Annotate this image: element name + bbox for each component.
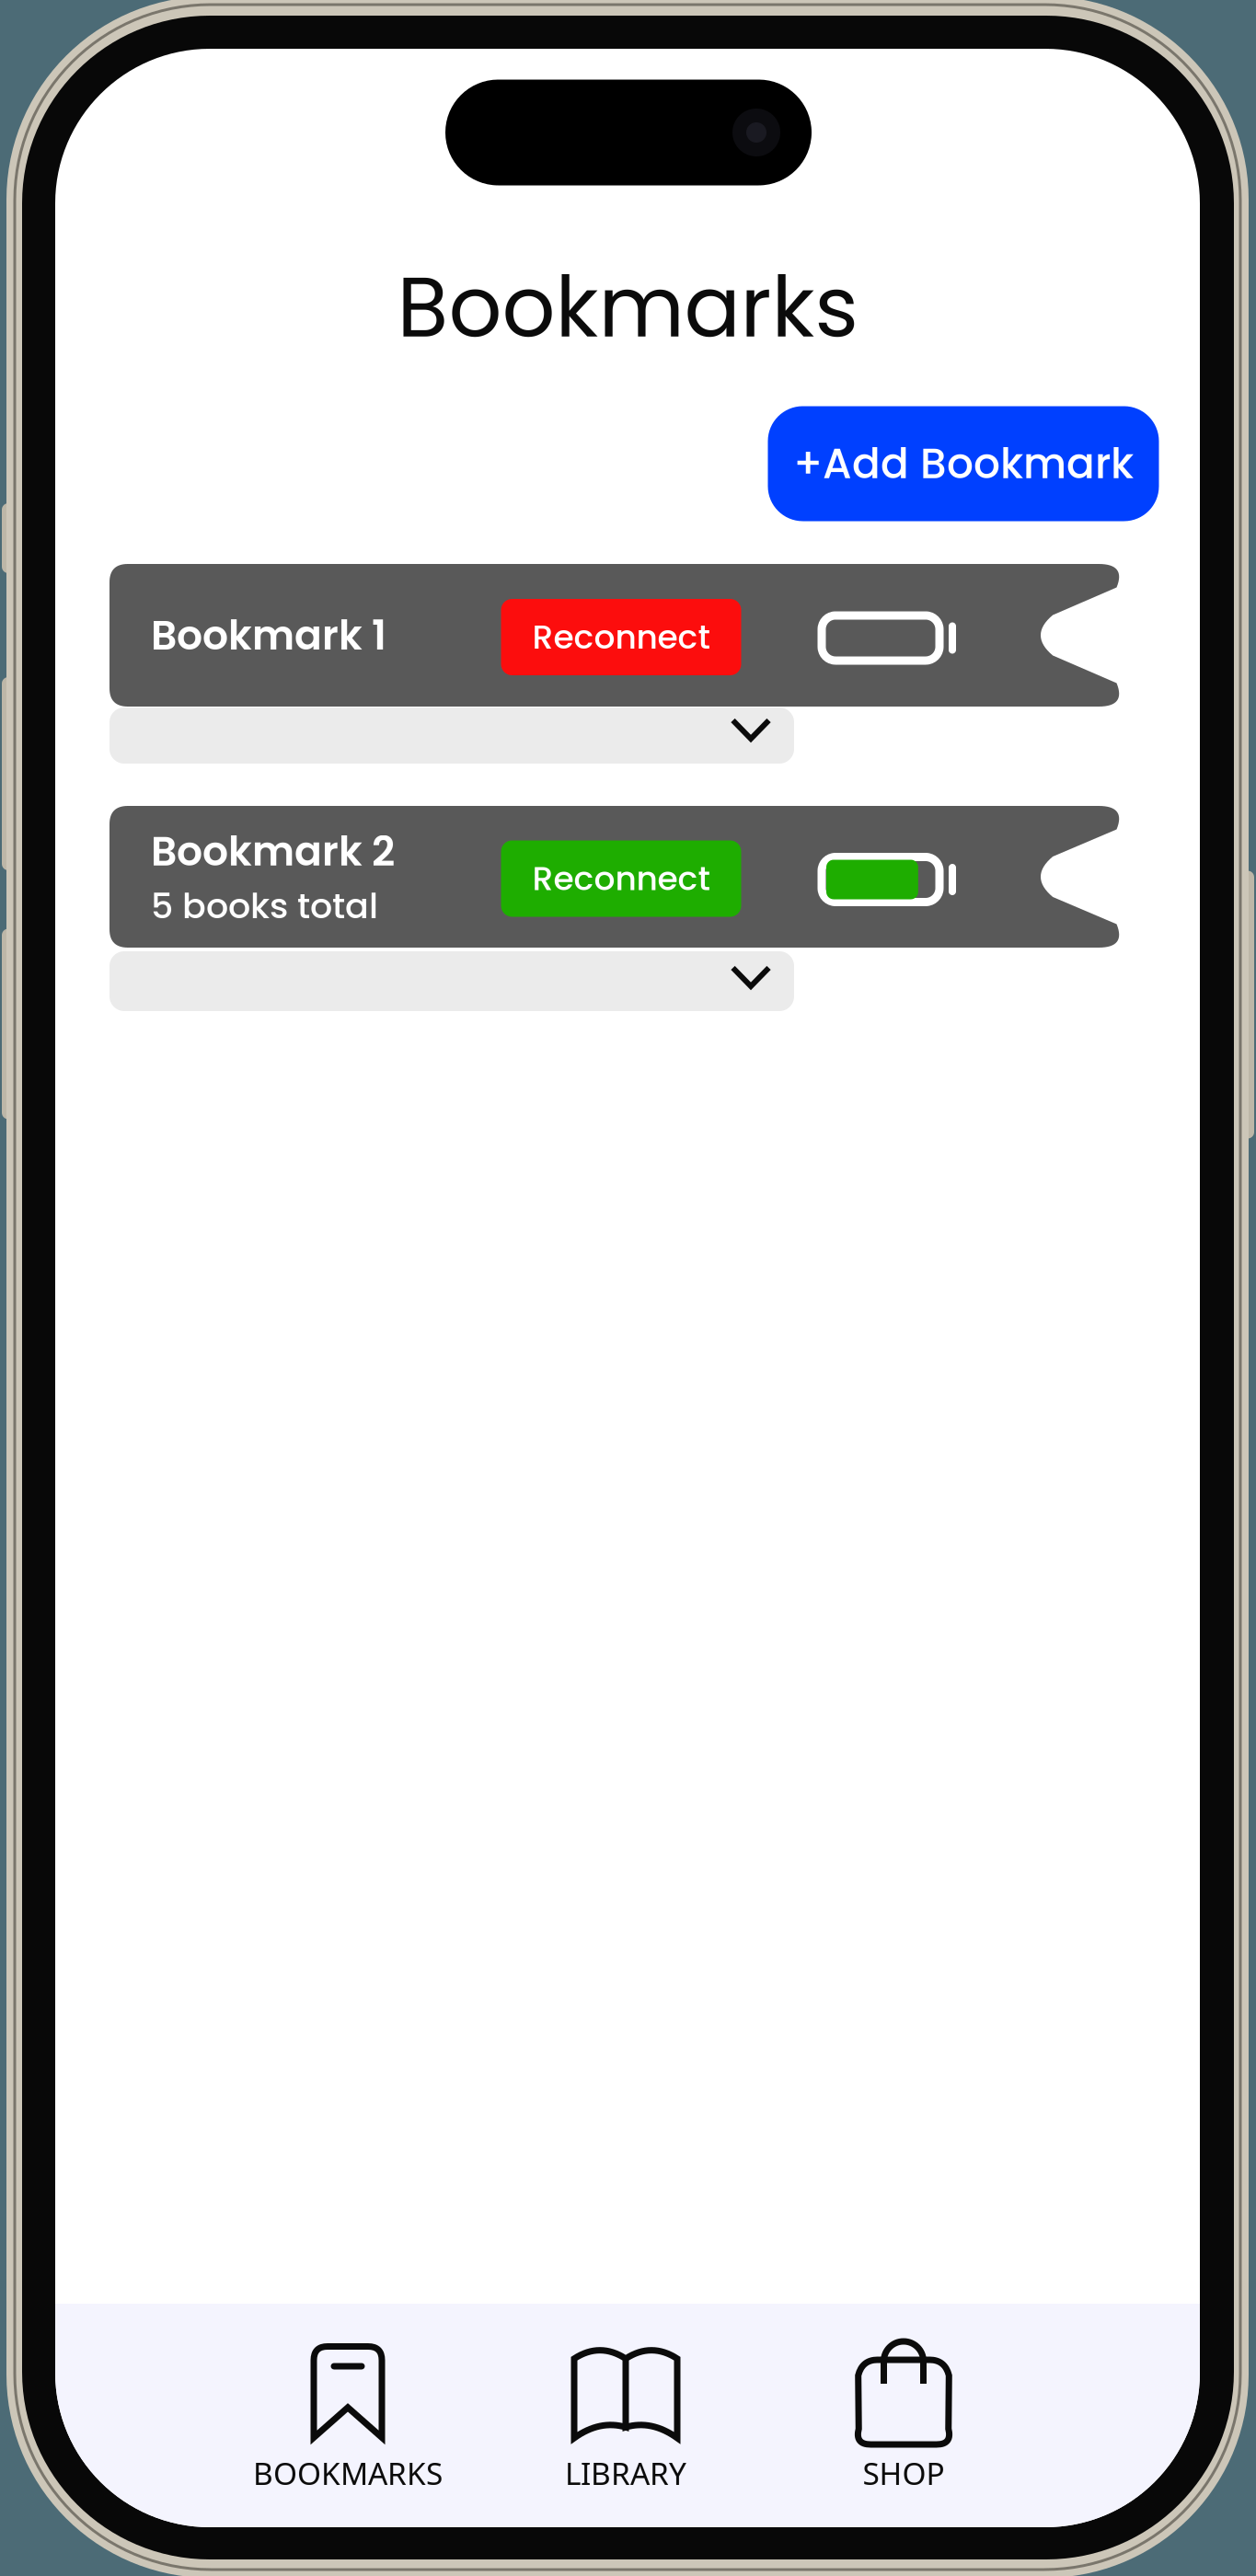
staticText: Reconnect <box>532 614 710 660</box>
button[interactable]: Reconnect <box>501 840 741 917</box>
button[interactable]: Expand Bookmark 2 <box>109 951 794 1011</box>
staticText: LIBRARY <box>565 2453 686 2493</box>
button[interactable]: +Add Bookmark <box>768 406 1159 521</box>
button[interactable]: SHOP <box>765 2304 1043 2527</box>
staticText: 5 books total <box>151 882 378 930</box>
button[interactable]: Expand Bookmark 1 <box>109 707 794 764</box>
button[interactable]: LIBRARY <box>487 2304 765 2527</box>
staticText: Reconnect <box>532 855 710 902</box>
staticText: SHOP <box>863 2453 945 2493</box>
staticText: Bookmark 1 <box>151 607 386 664</box>
staticText: +Add Bookmark <box>793 435 1134 493</box>
staticText: Bookmark 2 <box>151 823 395 880</box>
staticText: BOOKMARKS <box>253 2453 443 2493</box>
staticText: Bookmarks <box>397 249 858 366</box>
button[interactable]: Reconnect <box>501 599 741 675</box>
button[interactable]: BOOKMARKS <box>209 2304 487 2527</box>
